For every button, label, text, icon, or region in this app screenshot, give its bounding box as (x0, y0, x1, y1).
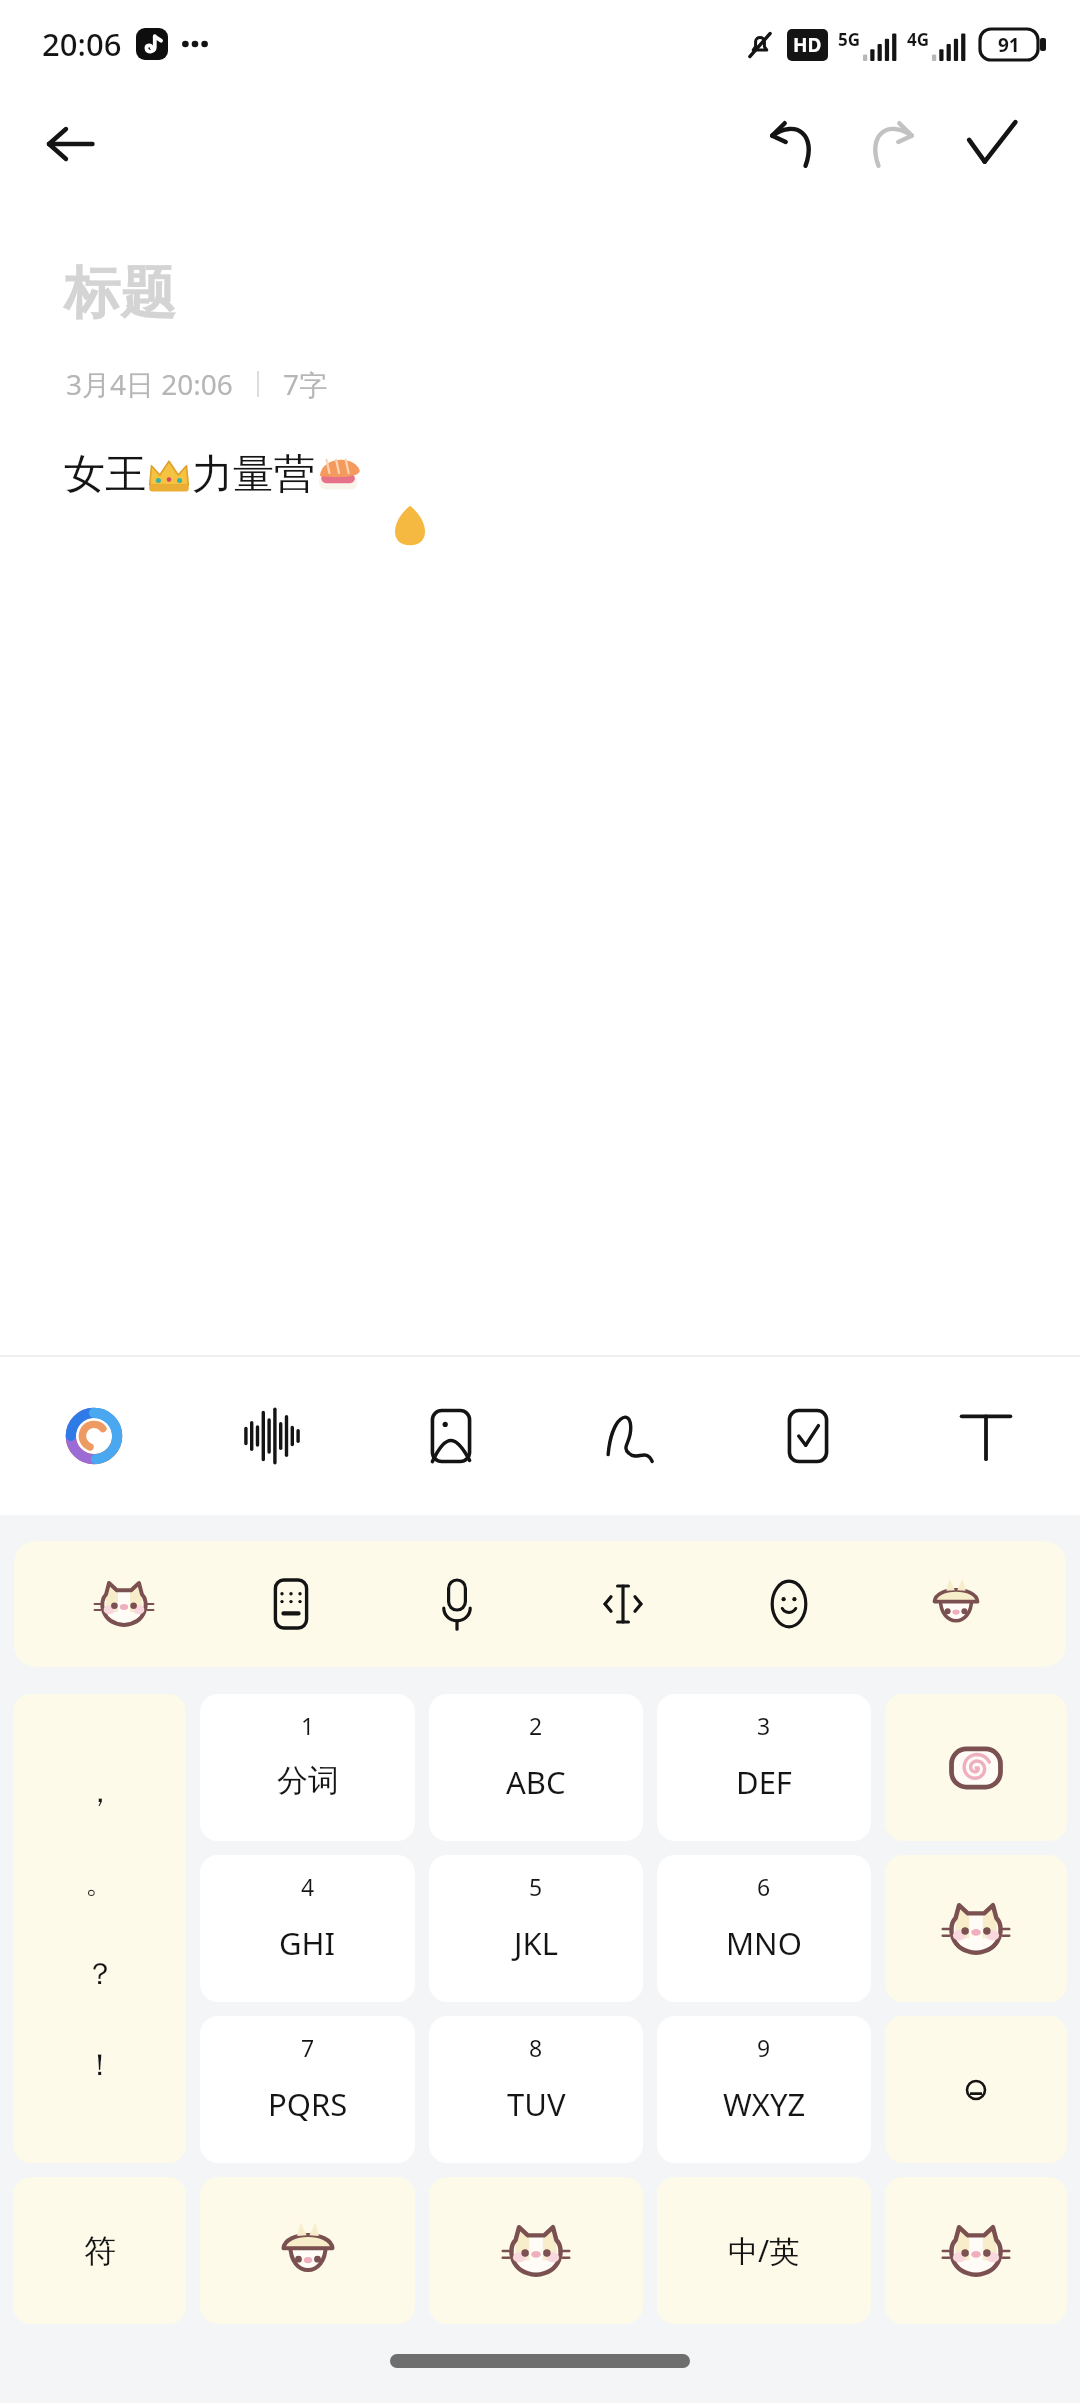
button[interactable]: Space (885, 1855, 1067, 2002)
button[interactable]: Voice input (401, 1548, 513, 1660)
staticText: 力量营 (192, 449, 315, 501)
button[interactable]: Keyboard layout (235, 1548, 347, 1660)
staticText: 女王 (64, 449, 146, 501)
button[interactable]: 3 DEF (657, 1694, 871, 1841)
button[interactable]: Backspace (885, 1694, 1067, 1841)
staticText: 9 (757, 2032, 771, 2063)
button[interactable]: Done (946, 98, 1038, 190)
staticText: 5G (838, 28, 861, 51)
button[interactable]: Redo (846, 98, 938, 190)
button[interactable]: 2 ABC (429, 1694, 643, 1841)
staticText: 4 (301, 1871, 315, 1902)
button[interactable]: 4 GHI (200, 1855, 415, 2002)
button[interactable]: 6 MNO (657, 1855, 871, 2002)
button[interactable]: 9 WXYZ (657, 2016, 871, 2163)
button[interactable]: 8 TUV (429, 2016, 643, 2163)
button[interactable]: Symbols (13, 2177, 186, 2324)
button[interactable]: Emoji (733, 1548, 845, 1660)
staticText: 。 (85, 1864, 115, 1902)
button[interactable]: 女王 (64, 449, 363, 501)
staticText: 符 (84, 2231, 116, 2271)
button[interactable]: 7 PQRS (200, 2016, 415, 2163)
button[interactable]: Back (26, 100, 114, 188)
button[interactable]: 1 分词 (200, 1694, 415, 1841)
staticText: 91 (998, 32, 1020, 58)
button[interactable]: 5 JKL (429, 1855, 643, 2002)
staticText: 8 (529, 2032, 543, 2063)
staticText: ？ (85, 1955, 115, 1993)
staticText: 6 (757, 1871, 771, 1902)
staticText: 7字 (283, 365, 328, 403)
button[interactable]: Options (885, 2016, 1067, 2163)
staticText: 1 (301, 1710, 315, 1741)
button[interactable]: Settings (900, 1548, 1012, 1660)
staticText: PQRS (268, 2083, 348, 2125)
staticText: 20:06 (42, 23, 122, 65)
staticText: ！ (85, 2046, 115, 2084)
staticText: DEF (736, 1761, 792, 1803)
staticText: 3月4日 20:06 (66, 365, 233, 403)
staticText: WXYZ (723, 2083, 806, 2125)
staticText: ABC (506, 1761, 566, 1803)
button[interactable]: Move cursor (567, 1548, 679, 1660)
button[interactable]: 标题 (64, 258, 176, 329)
staticText: HD (793, 32, 822, 58)
staticText: 7 (301, 2032, 315, 2063)
staticText: 2 (529, 1710, 543, 1741)
staticText: 4G (907, 28, 930, 51)
button[interactable]: Text format (932, 1382, 1040, 1490)
staticText: ， (85, 1773, 115, 1811)
button[interactable]: Keyboard theme (68, 1548, 180, 1660)
button[interactable]: AI assistant (40, 1382, 148, 1490)
button[interactable]: Handwriting (575, 1382, 683, 1490)
button[interactable]: Enter (885, 2177, 1067, 2324)
staticText: 5 (529, 1871, 543, 1902)
button[interactable]: Voice recording (218, 1382, 326, 1490)
button[interactable]: Checklist (754, 1382, 862, 1490)
button[interactable]: Punctuation (13, 1694, 186, 2163)
staticText: 3 (757, 1710, 771, 1741)
staticText: TUV (507, 2083, 566, 2125)
staticText: MNO (726, 1922, 802, 1964)
staticText: 中/英 (728, 2230, 800, 2271)
button[interactable]: Undo (746, 98, 838, 190)
button[interactable]: Insert image (397, 1382, 505, 1490)
staticText: GHI (279, 1922, 336, 1964)
button[interactable]: Chinese English toggle (657, 2177, 871, 2324)
button[interactable]: Sticker (200, 2177, 415, 2324)
button[interactable]: Emoticon (429, 2177, 643, 2324)
staticText: JKL (514, 1922, 558, 1964)
staticText: 分词 (277, 1761, 339, 1800)
